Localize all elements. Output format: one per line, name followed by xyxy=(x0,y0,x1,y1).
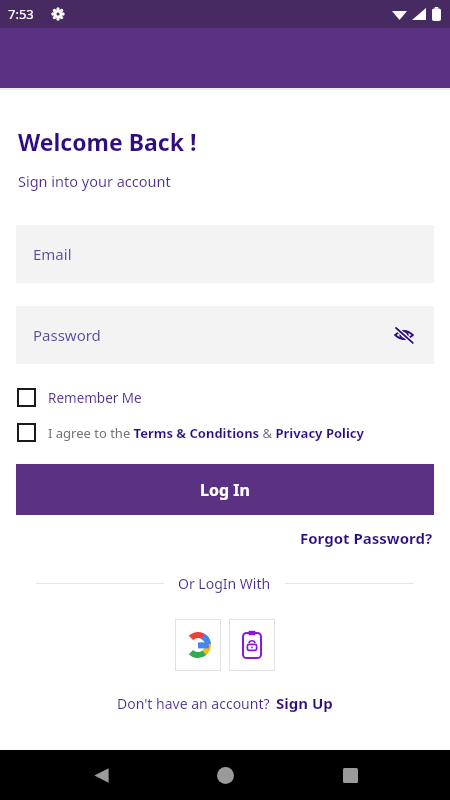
staticText: Forgot Password? xyxy=(300,528,433,548)
button[interactable]: I agree to the Terms & Conditions & Priv… xyxy=(17,423,438,442)
button[interactable]: Back xyxy=(77,751,125,799)
staticText: 7:53 xyxy=(8,5,34,23)
button[interactable]: Forgot Password? xyxy=(300,528,433,548)
button[interactable]: Toggle password visibility xyxy=(390,321,418,349)
button[interactable]: Home xyxy=(201,751,249,799)
button[interactable]: Email xyxy=(16,225,434,283)
staticText: Sign Up xyxy=(276,693,333,713)
staticText: Welcome Back ! xyxy=(18,126,197,157)
staticText: Password xyxy=(33,325,101,345)
button[interactable]: Sign in with Google xyxy=(175,619,221,671)
button[interactable]: Don't have an account? xyxy=(0,693,450,713)
staticText: Sign into your account xyxy=(18,171,171,191)
button[interactable]: Sign in with phone xyxy=(229,619,275,671)
button[interactable]: Password xyxy=(16,306,434,364)
staticText: Log In xyxy=(200,479,250,501)
staticText: Remember Me xyxy=(48,389,142,407)
staticText: Don't have an account? xyxy=(117,694,270,713)
staticText: I agree to the Terms & Conditions & Priv… xyxy=(48,424,364,442)
staticText: Email xyxy=(33,244,72,264)
staticText: Or LogIn With xyxy=(178,574,271,593)
button[interactable]: Recents xyxy=(326,751,374,799)
button[interactable]: Log In xyxy=(16,464,434,515)
button[interactable]: Remember Me xyxy=(17,388,438,407)
